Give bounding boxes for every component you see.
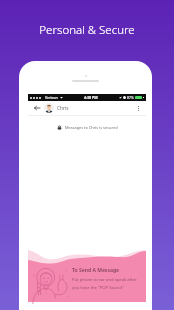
staticText: Personal & Secure [0, 22, 174, 38]
staticText: Put phone to ear and speak after [72, 277, 137, 283]
staticText: Chris [57, 105, 69, 112]
staticText: 4:38 PM [84, 95, 98, 100]
button[interactable]: More options [134, 104, 143, 113]
staticText: you hear the "POP Sound" [72, 285, 124, 291]
staticText: Verizon [45, 95, 58, 100]
staticText: Messages to Chris is secured [65, 125, 118, 130]
button[interactable]: Messages to Chris is secured [57, 125, 118, 130]
staticText: To Send A Message [72, 267, 120, 274]
staticText: 87% [127, 95, 134, 100]
button[interactable]: Back [32, 103, 42, 113]
